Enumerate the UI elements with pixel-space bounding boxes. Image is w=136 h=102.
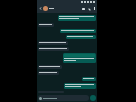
button[interactable]: Send voice message <box>90 95 96 101</box>
button[interactable]: More options <box>92 6 97 11</box>
button[interactable]: Video call <box>80 6 86 12</box>
button[interactable] <box>38 95 89 101</box>
button[interactable]: Back <box>38 6 43 11</box>
button[interactable]: Call <box>86 6 92 12</box>
